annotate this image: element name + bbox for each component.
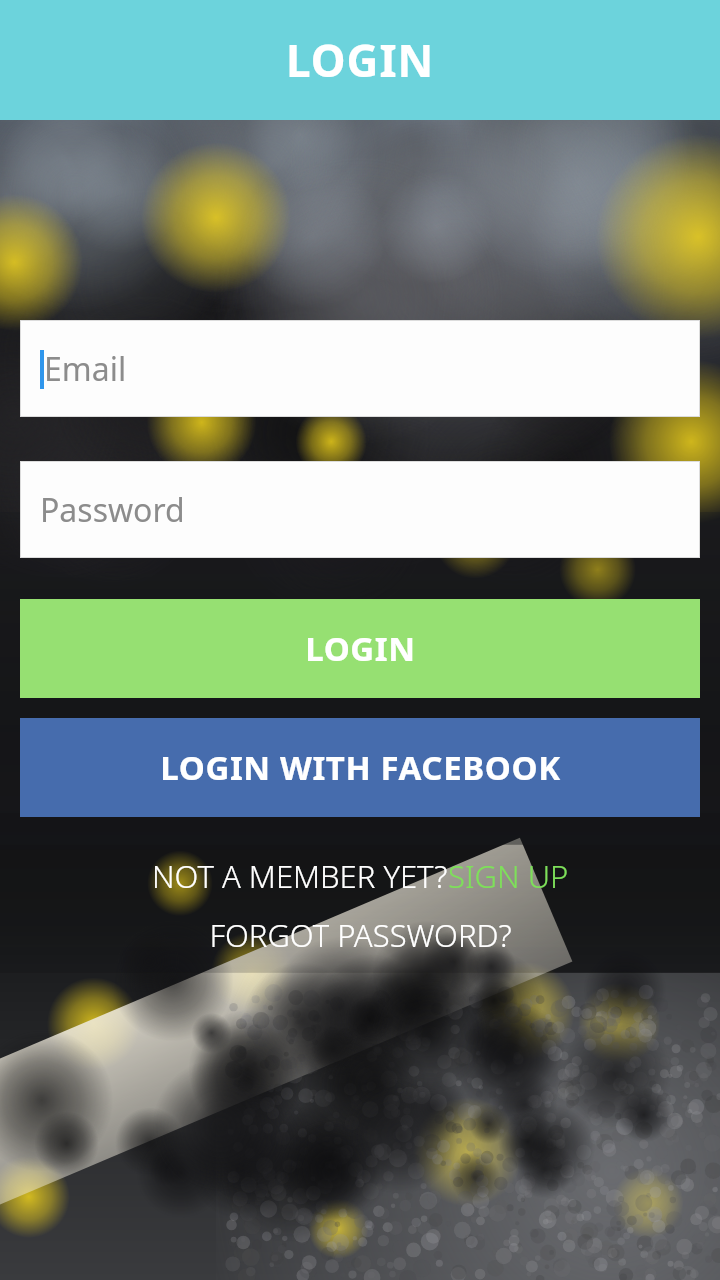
button[interactable]: NOT A MEMBER YET? — [152, 855, 448, 897]
button[interactable]: SIGN UP — [448, 855, 569, 897]
button[interactable]: LOGIN WITH FACEBOOK — [20, 718, 700, 817]
staticText: LOGIN — [305, 626, 416, 671]
staticText: LOGIN WITH FACEBOOK — [160, 745, 561, 790]
staticText: Email — [44, 347, 127, 391]
button[interactable]: FORGOT PASSWORD? — [209, 914, 512, 956]
button[interactable]: LOGIN — [20, 599, 700, 698]
staticText: LOGIN — [286, 30, 435, 90]
button[interactable]: Password — [21, 462, 699, 557]
button[interactable]: Email — [21, 321, 699, 416]
staticText: Password — [40, 488, 185, 532]
